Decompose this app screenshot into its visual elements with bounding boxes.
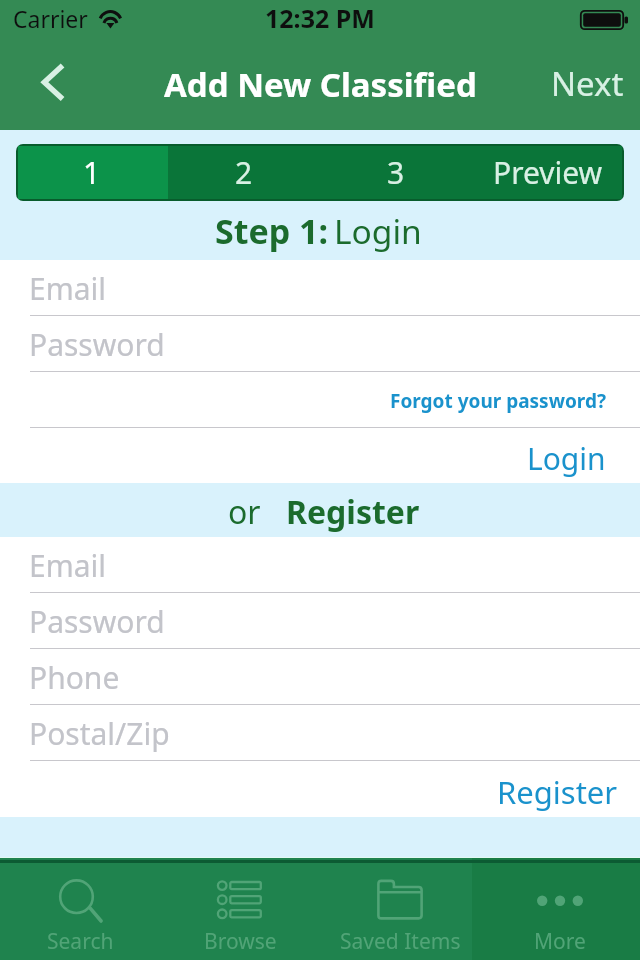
button[interactable]: Postal/Zip — [0, 705, 640, 761]
staticText: Forgot your password? — [390, 388, 606, 414]
button[interactable]: Browse — [160, 858, 320, 960]
staticText: Register — [497, 771, 618, 813]
button[interactable]: Next — [531, 40, 640, 130]
staticText: Carrier — [13, 3, 88, 34]
staticText: Next — [551, 61, 624, 106]
staticText: Search — [47, 927, 114, 956]
staticText: Postal/Zip — [29, 713, 170, 754]
button[interactable]: More — [480, 858, 640, 960]
staticText: Browse — [204, 927, 277, 956]
button[interactable]: Email — [0, 260, 640, 316]
staticText: Preview — [493, 152, 603, 193]
staticText: Saved Items — [340, 927, 461, 956]
button[interactable]: Search — [0, 858, 160, 960]
button[interactable]: 2 — [168, 144, 320, 201]
button[interactable]: Login — [0, 428, 640, 483]
staticText: Email — [29, 268, 107, 309]
staticText: or — [228, 490, 261, 534]
button[interactable]: 1 — [16, 144, 168, 201]
staticText: Email — [29, 545, 107, 586]
staticText: Register — [286, 490, 420, 534]
button[interactable]: Phone — [0, 649, 640, 705]
staticText: Password — [29, 324, 165, 365]
staticText: Add New Classified — [164, 62, 477, 107]
staticText: Login — [334, 208, 422, 254]
staticText: 2 — [235, 152, 253, 193]
staticText: Step 1: — [215, 208, 329, 254]
button[interactable]: Register — [0, 761, 640, 817]
staticText: Phone — [29, 657, 120, 698]
button[interactable]: Password — [0, 316, 640, 372]
button[interactable]: 3 — [320, 144, 472, 201]
button[interactable]: Forgot your password? — [0, 372, 640, 428]
staticText: More — [534, 927, 586, 956]
button[interactable]: Email — [0, 537, 640, 593]
staticText: Password — [29, 601, 165, 642]
button[interactable]: Back — [0, 40, 84, 130]
staticText: 12:32 PM — [265, 1, 375, 35]
staticText: 3 — [387, 152, 405, 193]
button[interactable]: Password — [0, 593, 640, 649]
staticText: Login — [527, 438, 606, 479]
button[interactable]: Saved Items — [320, 858, 480, 960]
staticText: 1 — [83, 152, 101, 193]
button[interactable]: Preview — [472, 144, 624, 201]
